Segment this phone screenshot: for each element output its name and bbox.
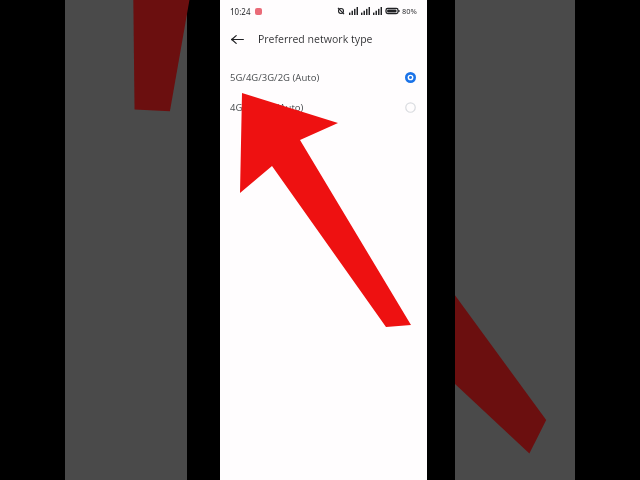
staticText: 5G/4G/3G/2G (Auto) (230, 71, 405, 84)
button[interactable]: Back (224, 26, 250, 52)
staticText: 4G/3G/2G (Auto) (230, 101, 405, 114)
staticText: 80% (402, 6, 417, 16)
staticText: Preferred network type (258, 32, 373, 46)
button[interactable]: 4G/3G/2G (Auto) (220, 92, 427, 122)
button[interactable]: 5G/4G/3G/2G (Auto) (220, 62, 427, 92)
staticText: 10:24 (230, 6, 251, 17)
